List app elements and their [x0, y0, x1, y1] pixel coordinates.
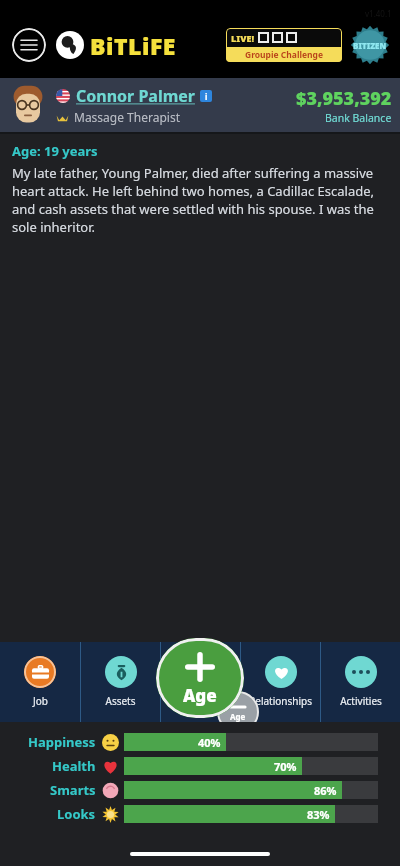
button[interactable]: Relationships — [241, 642, 320, 722]
staticText: Looks — [57, 805, 96, 823]
staticText: Health — [52, 757, 96, 775]
staticText: Happiness — [28, 733, 96, 751]
button[interactable]: Age — [156, 638, 244, 718]
staticText: 70% — [274, 759, 297, 774]
button[interactable]: Assets — [81, 642, 160, 722]
staticText: Assets — [105, 694, 136, 708]
button[interactable]: Age — [217, 691, 259, 733]
staticText: Job — [33, 694, 48, 708]
button[interactable]: Activities — [321, 642, 400, 722]
staticText: Massage Therapist — [74, 109, 180, 125]
staticText: Bank Balance — [325, 111, 392, 125]
staticText: v1.40.1 — [365, 8, 392, 19]
button[interactable]: Menu — [12, 28, 46, 62]
staticText: $3,953,392 — [296, 86, 392, 111]
staticText: Age: 19 years — [12, 142, 98, 160]
staticText: i — [205, 91, 208, 102]
staticText: Age — [230, 711, 246, 722]
staticText: BiTLiFE — [90, 30, 176, 61]
staticText: Relationships — [249, 694, 312, 708]
button[interactable]: Job — [0, 642, 80, 722]
staticText: LIVE! — [231, 32, 254, 44]
staticText: 40% — [198, 735, 221, 750]
staticText: 83% — [307, 807, 330, 822]
staticText: BITIZEN — [353, 40, 387, 51]
staticText: My late father, Young Palmer, died after… — [12, 164, 386, 236]
staticText: Activities — [340, 694, 382, 708]
button[interactable]: Bitizen — [350, 25, 390, 65]
staticText: Age — [183, 684, 217, 707]
staticText: Smarts — [50, 781, 96, 799]
staticText: Connor Palmer — [76, 85, 195, 107]
staticText: 86% — [314, 783, 337, 798]
button[interactable]: LIVE! — [226, 28, 342, 62]
button[interactable]: Connor Palmer — [8, 78, 392, 132]
staticText: Groupie Challenge — [245, 49, 324, 61]
